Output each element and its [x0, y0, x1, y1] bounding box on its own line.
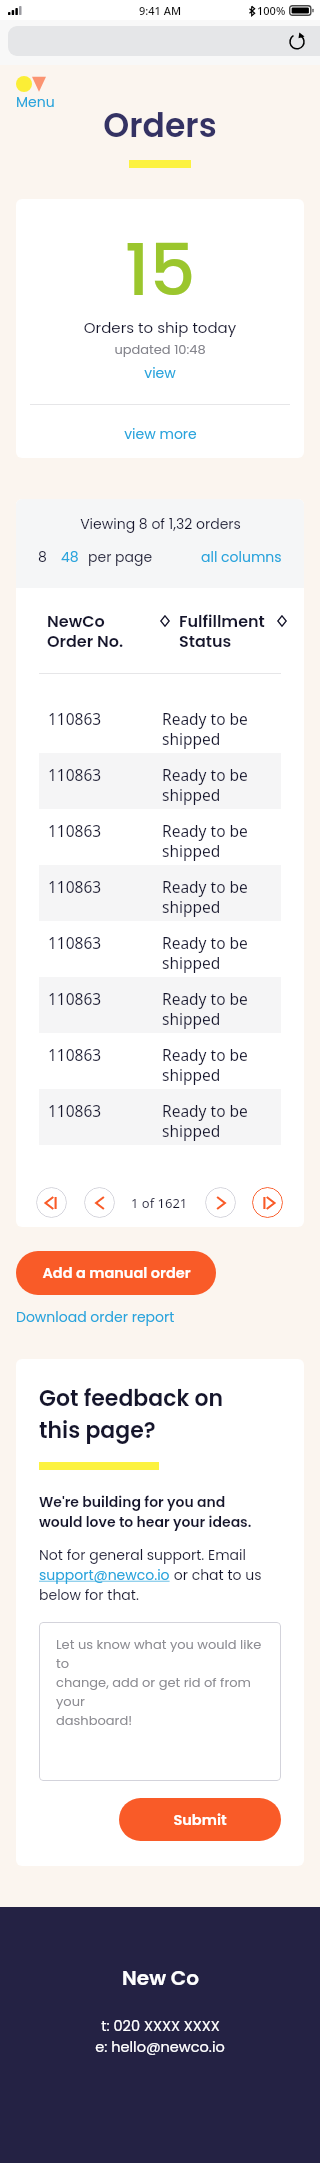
- staticText: Orders: [0, 102, 320, 148]
- button[interactable]: 110863: [39, 1033, 281, 1089]
- staticText: Ready to be shipped: [162, 820, 281, 861]
- button[interactable]: 110863: [39, 753, 281, 809]
- button[interactable]: 110863: [39, 977, 281, 1033]
- staticText: 110863: [48, 820, 156, 841]
- staticText: 100%: [257, 3, 286, 18]
- button[interactable]: Address bar: [8, 26, 320, 56]
- staticText: Fulfillment Status: [179, 610, 265, 650]
- staticText: Ready to be shipped: [162, 764, 281, 805]
- button[interactable]: Previous page: [84, 1187, 115, 1218]
- button[interactable]: 8: [36, 547, 49, 567]
- button[interactable]: Menu: [16, 76, 55, 112]
- staticText: Ready to be shipped: [162, 876, 281, 917]
- staticText: Let us know what you would like to chang…: [56, 1635, 277, 1729]
- button[interactable]: Add a manual order: [16, 1251, 216, 1295]
- button[interactable]: view more: [116, 423, 205, 445]
- button[interactable]: support@newco.io: [39, 1565, 170, 1585]
- button[interactable]: all columns: [199, 547, 284, 567]
- staticText: 110863: [48, 708, 156, 729]
- staticText: 9:41 AM: [139, 3, 182, 18]
- staticText: Ready to be shipped: [162, 988, 281, 1029]
- button[interactable]: Feedback text field: [39, 1622, 281, 1781]
- staticText: Add a manual order: [42, 1263, 191, 1283]
- staticText: 110863: [48, 1100, 156, 1121]
- button[interactable]: 48: [59, 547, 81, 567]
- staticText: Viewing 8 of 1,32 orders: [80, 514, 241, 534]
- button[interactable]: 110863: [39, 865, 281, 921]
- staticText: 110863: [48, 1044, 156, 1065]
- staticText: t: 020 XXXX XXXX: [101, 2016, 220, 2036]
- staticText: NewCo Order No.: [47, 610, 124, 650]
- staticText: Menu: [16, 92, 55, 112]
- button[interactable]: 110863: [39, 1089, 281, 1145]
- staticText: 110863: [48, 932, 156, 953]
- staticText: per page: [88, 547, 153, 567]
- staticText: New Co: [122, 1964, 199, 1992]
- button[interactable]: Download order report: [0, 1307, 175, 1327]
- button[interactable]: Reload: [288, 32, 306, 50]
- staticText: 15: [16, 219, 304, 320]
- staticText: Ready to be shipped: [162, 708, 281, 749]
- staticText: Ready to be shipped: [162, 1100, 281, 1141]
- staticText: or chat to us: [170, 1565, 262, 1585]
- button[interactable]: 110863: [39, 697, 281, 753]
- staticText: below for that.: [39, 1585, 139, 1605]
- staticText: e: hello@newco.io: [95, 2037, 225, 2057]
- staticText: Got feedback on this page?: [39, 1383, 224, 1446]
- button[interactable]: Next page: [205, 1187, 236, 1218]
- button[interactable]: view: [136, 362, 184, 384]
- staticText: Ready to be shipped: [162, 932, 281, 973]
- button[interactable]: 110863: [39, 809, 281, 865]
- staticText: Not for general support. Email: [39, 1545, 246, 1565]
- staticText: updated 10:48: [16, 340, 304, 358]
- button[interactable]: First page: [36, 1187, 67, 1218]
- staticText: 110863: [48, 876, 156, 897]
- staticText: 110863: [48, 988, 156, 1009]
- button[interactable]: Submit: [119, 1798, 281, 1841]
- staticText: 110863: [48, 764, 156, 785]
- staticText: 1 of 1621: [131, 1194, 188, 1212]
- staticText: We're building for you and would love to…: [39, 1492, 252, 1532]
- button[interactable]: 110863: [39, 921, 281, 977]
- staticText: Orders to ship today: [16, 317, 304, 338]
- staticText: Ready to be shipped: [162, 1044, 281, 1085]
- button[interactable]: Last page: [252, 1187, 283, 1218]
- staticText: Submit: [173, 1810, 227, 1830]
